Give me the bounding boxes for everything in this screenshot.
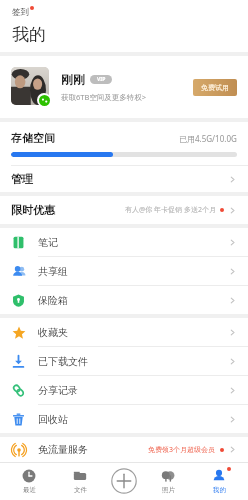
staticText: 有人@你 年卡促销 多送2个月 [125,205,216,215]
staticText: 文件 [74,486,87,494]
staticText: 照片 [162,486,175,494]
button[interactable]: 回收站 [0,405,248,433]
staticText: 共享组 [38,265,68,278]
button[interactable]: 存储空间 [0,122,248,165]
staticText: 收藏夹 [38,326,68,339]
staticText: 我的 [12,24,46,45]
staticText: 管理 [11,172,33,186]
button[interactable]: 刚刚 [0,56,248,118]
staticText: 免费试用 [201,83,229,92]
staticText: 已下载文件 [38,355,88,368]
button[interactable]: 限时优惠 [0,196,248,224]
staticText: 我的 [213,486,226,494]
button[interactable]: 共享组 [0,257,248,285]
button[interactable]: 免费试用 [193,79,237,96]
staticText: 分享记录 [38,384,78,397]
staticText: 最近 [23,486,36,494]
staticText: 刚刚 [61,72,85,87]
button[interactable]: 分享记录 [0,376,248,404]
staticText: 限时优惠 [11,203,55,217]
button[interactable]: 新建 [109,466,139,496]
button[interactable]: 已下载文件 [0,347,248,375]
button[interactable]: 签到 [10,5,36,20]
staticText: 签到 [12,7,29,18]
button[interactable]: 我的 [197,465,241,497]
button[interactable]: 保险箱 [0,286,248,314]
button[interactable]: 照片 [146,465,190,497]
staticText: 笔记 [38,236,58,249]
staticText: 回收站 [38,413,68,426]
staticText: 免流量服务 [38,443,88,456]
staticText: VIP [97,76,106,83]
button[interactable]: 管理 [0,166,248,192]
staticText: 保险箱 [38,294,68,307]
staticText: 已用4.5G/10.0G [179,133,237,144]
button[interactable]: 笔记 [0,228,248,256]
staticText: 获取6TB空间及更多特权> [61,92,147,102]
staticText: 存储空间 [11,131,55,145]
button[interactable]: 免流量服务 [0,437,248,462]
button[interactable]: 文件 [58,465,102,497]
button[interactable]: 收藏夹 [0,318,248,346]
staticText: 免费领3个月超级会员 [148,445,216,455]
button[interactable]: 最近 [7,465,51,497]
